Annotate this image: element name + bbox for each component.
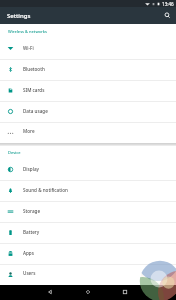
staticText: Device — [8, 150, 21, 155]
staticText: Sound & notification — [23, 187, 68, 193]
staticText: More — [23, 128, 35, 134]
button[interactable]: Data usage — [0, 102, 176, 123]
button[interactable]: Sound & notification — [0, 181, 176, 202]
staticText: Apps — [23, 250, 34, 256]
button[interactable]: Users — [0, 265, 176, 285]
button[interactable]: SIM cards — [0, 81, 176, 102]
staticText: 13:46 — [162, 1, 174, 7]
button[interactable]: Apps — [0, 244, 176, 265]
staticText: Display — [23, 166, 39, 172]
button[interactable]: Battery — [0, 223, 176, 244]
button[interactable]: Storage — [0, 202, 176, 223]
button[interactable]: Wi-Fi — [0, 39, 176, 60]
button[interactable]: Back — [44, 286, 56, 298]
button[interactable]: Bluetooth — [0, 60, 176, 81]
button[interactable]: More — [0, 123, 176, 143]
staticText: Users — [23, 270, 36, 276]
staticText: Data usage — [23, 108, 48, 114]
staticText: Wi-Fi — [23, 45, 34, 51]
button[interactable]: Search — [159, 7, 176, 24]
staticText: SIM cards — [23, 87, 45, 93]
button[interactable]: Recents — [119, 286, 131, 298]
staticText: Wireless & networks — [8, 29, 47, 34]
staticText: Battery — [23, 229, 40, 235]
button[interactable]: Display — [0, 160, 176, 181]
staticText: Bluetooth — [23, 66, 45, 72]
staticText: Storage — [23, 208, 41, 214]
staticText: Settings — [7, 12, 31, 20]
button[interactable]: Home — [82, 286, 94, 298]
